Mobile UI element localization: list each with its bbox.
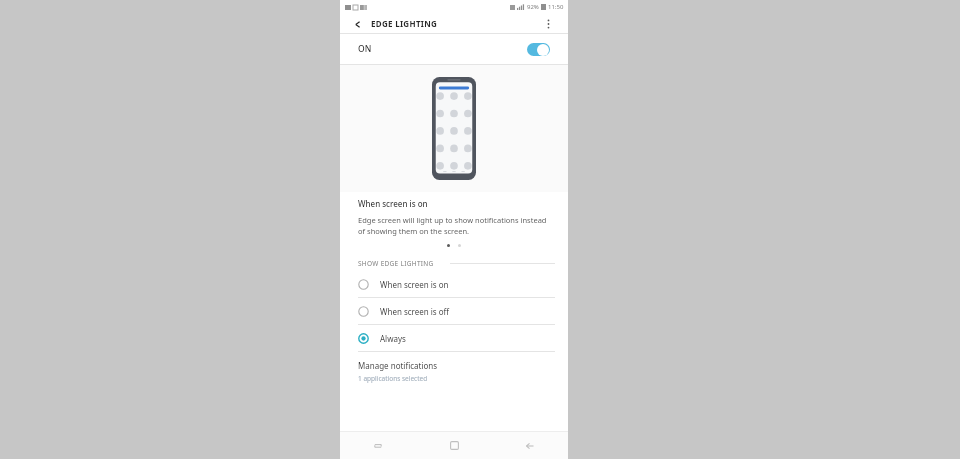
staticText: EDGE LIGHTING	[371, 18, 438, 29]
staticText: When screen is on	[358, 198, 428, 209]
button[interactable]: Recents	[340, 432, 416, 459]
button[interactable]: More options	[541, 17, 555, 31]
button[interactable]: When screen is off	[340, 298, 568, 324]
staticText: When screen is off	[380, 306, 450, 317]
button[interactable]: Manage notifications	[340, 352, 568, 391]
staticText: SHOW EDGE LIGHTING	[358, 259, 434, 268]
button[interactable]: Always	[340, 325, 568, 351]
staticText: 11:50	[548, 3, 564, 11]
button[interactable]: ON	[340, 34, 568, 64]
staticText: When screen is on	[380, 279, 449, 290]
button[interactable]: When screen is on	[340, 271, 568, 297]
staticText: Manage notifications	[358, 360, 438, 371]
staticText: Edge screen will light up to show notifi…	[358, 215, 550, 236]
staticText: Always	[380, 333, 406, 344]
button[interactable]: Home	[416, 432, 492, 459]
staticText: 1 applications selected	[358, 374, 428, 383]
button[interactable]: Back	[492, 432, 568, 459]
staticText: 92%	[527, 3, 539, 11]
button[interactable]: Back	[351, 17, 365, 31]
staticText: ON	[358, 43, 372, 55]
